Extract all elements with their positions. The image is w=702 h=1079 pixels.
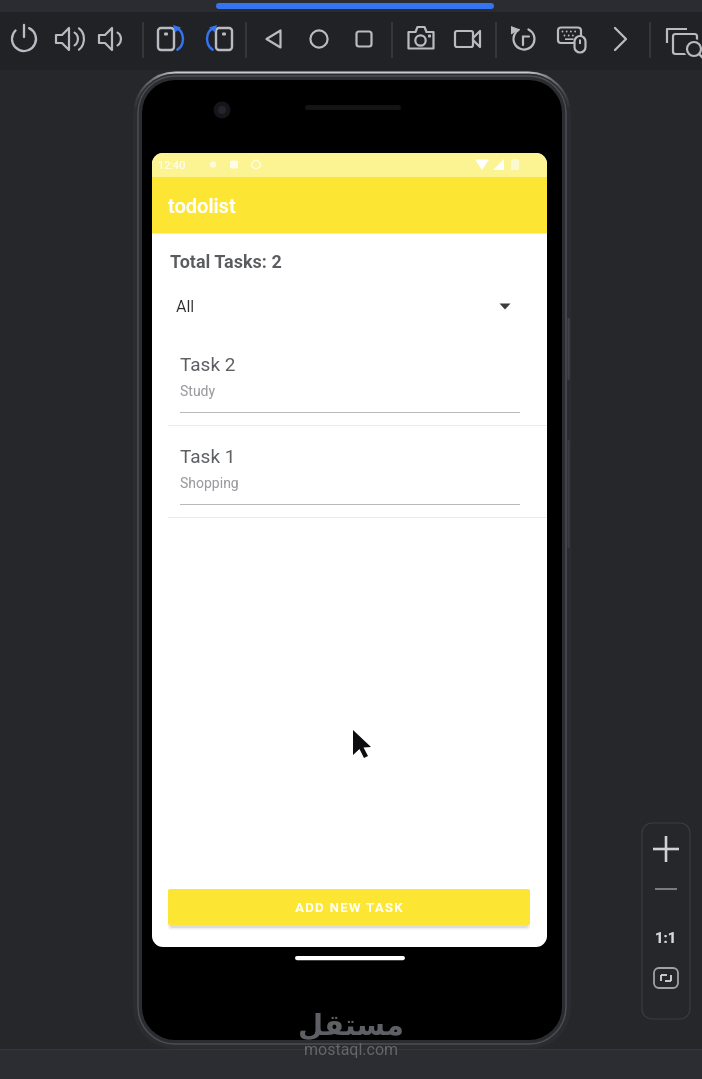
button[interactable]: Fit to screen [651,963,681,993]
staticText: Study [180,383,216,399]
button[interactable]: todolist [152,177,547,233]
button[interactable]: 1:1 [655,929,677,947]
staticText: mostaql.com [304,1040,399,1059]
staticText: All [176,297,195,316]
staticText: Task 2 [180,353,236,375]
button[interactable]: All [168,289,511,323]
staticText: 12:40 [158,159,186,172]
staticText: Total Tasks: 2 [170,251,282,272]
button[interactable]: Task 1 [152,445,547,537]
staticText: Shopping [180,475,239,491]
staticText: todolist [168,194,236,217]
staticText: Task 1 [180,445,236,467]
button[interactable]: ADD NEW TASK [168,889,530,925]
button[interactable]: Task 2 [152,353,547,445]
staticText: مستقل [298,1008,405,1042]
staticText: ADD NEW TASK [295,900,404,915]
